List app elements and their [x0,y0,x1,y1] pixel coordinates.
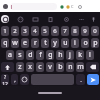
staticText: c [38,62,42,72]
button[interactable]: c [36,62,44,72]
staticText: 0 [93,27,97,35]
button[interactable]: r [31,38,39,48]
staticText: , [14,76,16,84]
button[interactable]: y [51,38,59,48]
button[interactable]: 3 [21,26,29,36]
staticText: 2 [13,27,17,35]
staticText: e [23,38,27,48]
staticText: 1 [3,27,7,35]
button[interactable]: ?123 [1,74,9,85]
staticText: i [74,38,76,48]
button[interactable]: a [6,50,14,60]
button[interactable] [10,3,57,10]
button[interactable]: Stickers [14,13,26,25]
staticText: o [83,38,88,48]
button[interactable]: Emoji [59,4,64,9]
staticText: u [63,38,68,48]
staticText: w [12,38,18,48]
button[interactable]: d [26,50,34,60]
button[interactable]: f [36,50,44,60]
button[interactable]: w [11,38,19,48]
button[interactable]: q [1,38,9,48]
button[interactable]: g [46,50,54,60]
staticText: 7 [63,27,67,35]
staticText: . [80,76,82,84]
staticText: d [28,50,33,60]
button[interactable]: Sticker [65,4,70,9]
button[interactable]: u [61,38,69,48]
button[interactable]: i [71,38,79,48]
button[interactable]: 6 [51,26,59,36]
button[interactable]: t [41,38,49,48]
staticText: z [18,62,22,72]
button[interactable]: h [56,50,64,60]
staticText: a [8,50,12,60]
button[interactable]: Settings [60,13,72,25]
staticText: ?123 [1,74,9,85]
staticText: k [78,50,82,60]
button[interactable]: p [91,38,99,48]
button[interactable]: Backspace [86,62,99,72]
staticText: n [68,62,73,72]
button[interactable]: k [76,50,84,60]
button[interactable]: b [56,62,64,72]
staticText: g [48,50,53,60]
staticText: t [44,38,47,48]
staticText: h [58,50,63,60]
button[interactable]: x [26,62,34,72]
staticText: j [69,50,71,60]
button[interactable]: Emoji [20,74,29,85]
staticText: 9 [83,27,87,35]
button[interactable]: 4 [31,26,39,36]
button[interactable]: v [46,62,54,72]
button[interactable]: More [75,13,87,25]
button[interactable]: n [66,62,74,72]
staticText: q [3,38,8,48]
button[interactable]: Clipboard [44,13,56,25]
button[interactable]: Voice input [87,13,99,25]
button[interactable]: 7 [61,26,69,36]
staticText: r [34,38,37,48]
staticText: CD [71,4,76,9]
button[interactable]: 1 [1,26,9,36]
button[interactable]: 0 [91,26,99,36]
staticText: v [48,62,52,72]
button[interactable]: Gboard logo [1,15,9,23]
staticText: l [89,50,91,60]
button[interactable]: Send [87,74,99,85]
button[interactable]: 8 [71,26,79,36]
staticText: 6 [53,27,57,35]
button[interactable]: Profile [3,4,8,9]
button[interactable]: GIF [29,13,41,25]
button[interactable]: Shift [1,62,14,72]
button[interactable]: Camera [77,4,82,9]
staticText: 8 [73,27,77,35]
staticText: x [28,62,32,72]
button[interactable]: l [86,50,94,60]
staticText: p [93,38,98,48]
button[interactable]: s [16,50,24,60]
staticText: b [58,62,63,72]
button[interactable]: 9 [81,26,89,36]
button[interactable]: 2 [11,26,19,36]
staticText: s [18,50,22,60]
button[interactable]: z [16,62,24,72]
button[interactable]: e [21,38,29,48]
button[interactable]: j [66,50,74,60]
button[interactable]: m [76,62,84,72]
button[interactable]: , [11,74,18,85]
button[interactable] [31,74,74,85]
staticText: 3 [23,27,27,35]
staticText: 4 [33,27,37,35]
button[interactable]: o [81,38,89,48]
staticText: y [53,38,57,48]
button[interactable]: . [76,74,85,85]
staticText: m [77,62,84,72]
staticText: f [39,50,42,60]
button[interactable]: 5 [41,26,49,36]
staticText: 5 [43,27,47,35]
button[interactable]: Gif [71,4,76,9]
